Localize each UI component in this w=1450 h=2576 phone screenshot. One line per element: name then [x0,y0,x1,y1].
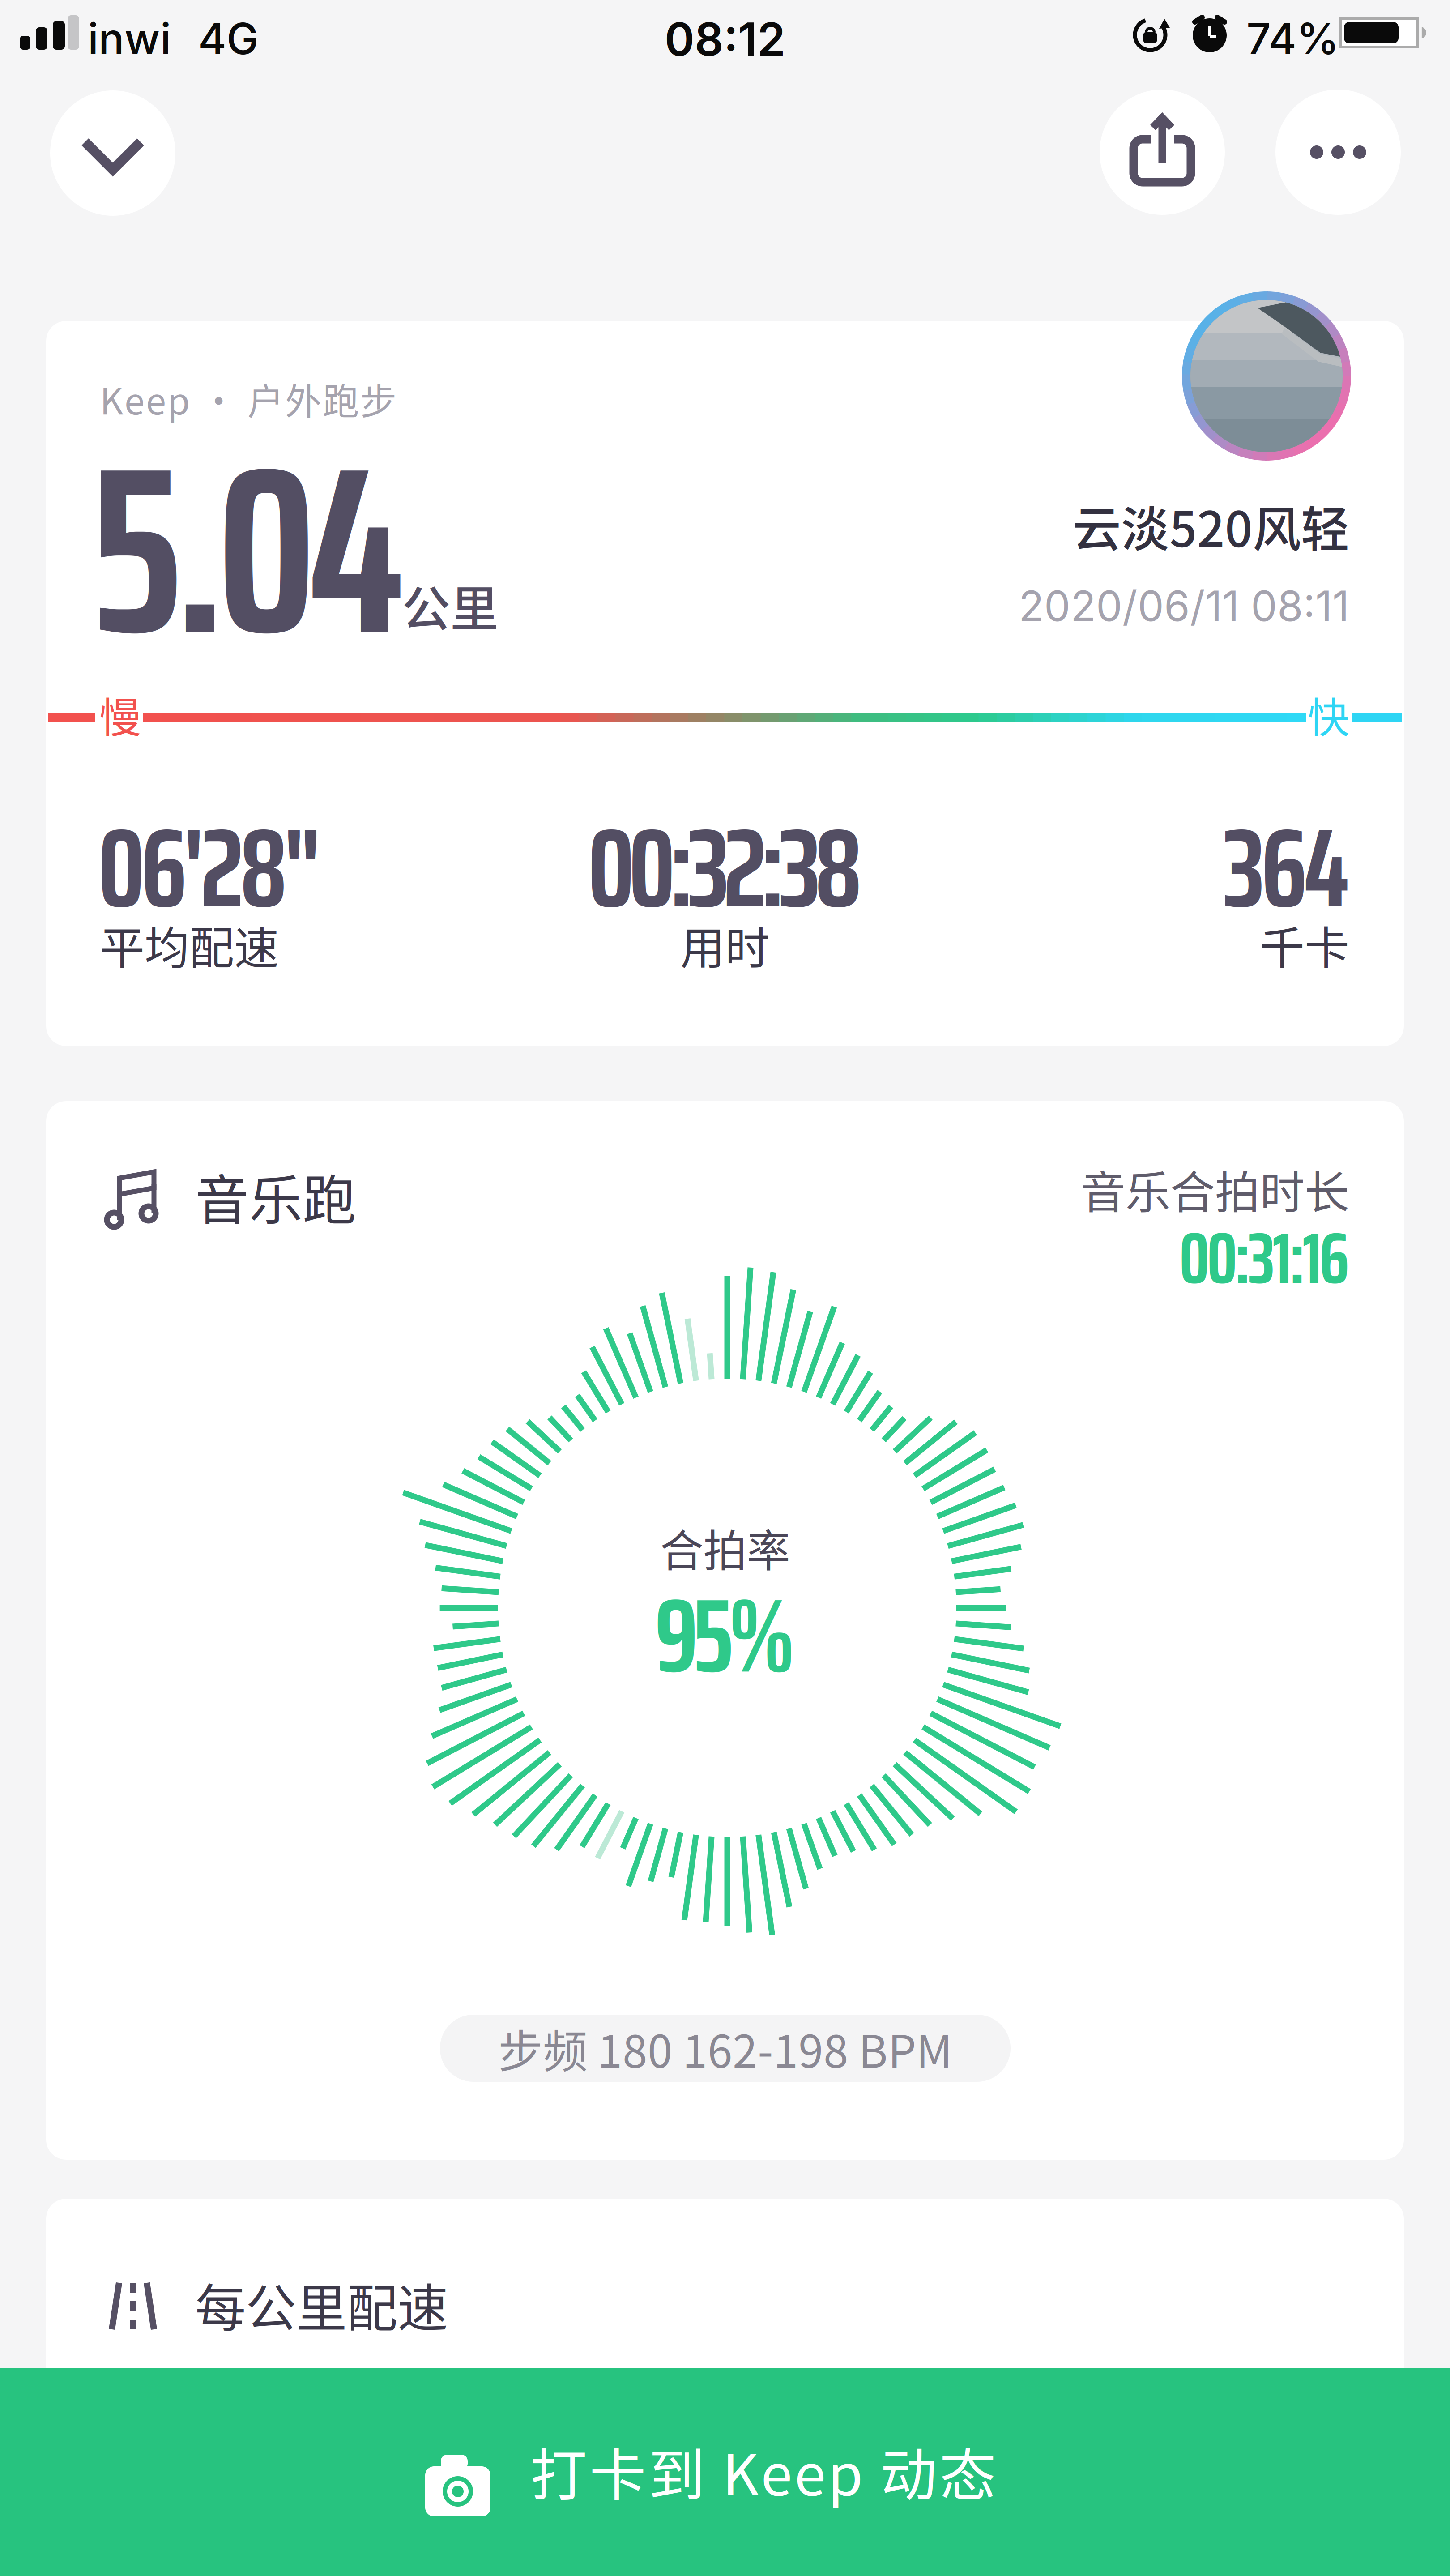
button[interactable]: 打卡到 Keep 动态 [0,2368,1450,2576]
staticText: 364 [1223,781,1349,955]
staticText: Keep · 户外跑步 [100,372,397,425]
staticText: 5.04 [91,366,405,734]
button[interactable]: Profile [1182,291,1351,461]
staticText: 00:32:38 [588,781,862,955]
staticText: 4G [198,13,259,65]
staticText: 云淡520风轻 [1073,491,1349,561]
staticText: 2020/06/11 08:11 [1019,581,1349,631]
staticText: 打卡到 Keep 动态 [530,2430,996,2512]
staticText: 公里 [402,570,499,640]
staticText: inwi [88,13,171,65]
button[interactable]: Close [50,90,175,216]
staticText: 音乐合拍时长 [1081,1157,1349,1221]
staticText: 74% [1246,13,1339,65]
staticText: 快 [1308,684,1349,745]
staticText: 千卡 [1260,912,1349,977]
staticText: 每公里配速 [195,2268,448,2341]
staticText: 08:12 [665,12,785,67]
staticText: 00:31:16 [1179,1202,1349,1315]
staticText: 合拍率 [660,1516,790,1579]
button[interactable]: More [1275,90,1401,215]
button[interactable]: Share [1100,90,1225,215]
staticText: 慢 [99,684,141,745]
staticText: 用时 [680,912,770,977]
staticText: 音乐跑 [195,1158,356,1235]
staticText: 06'28" [98,781,321,955]
staticText: 步频 180 162-198 BPM [498,2016,952,2081]
staticText: 平均配速 [100,912,279,977]
staticText: 95% [655,1554,795,1717]
